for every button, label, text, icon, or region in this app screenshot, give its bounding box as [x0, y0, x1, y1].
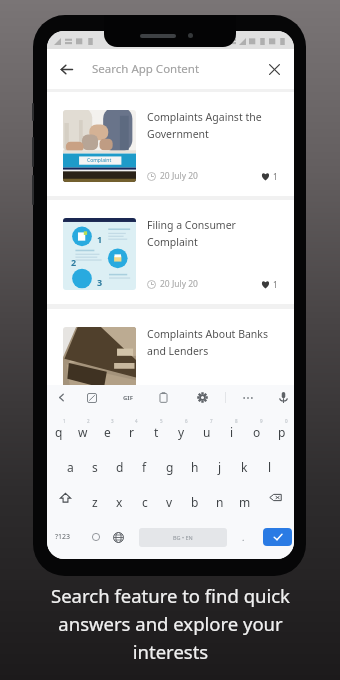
button[interactable]: p [269, 410, 294, 445]
staticText: 0 [285, 418, 288, 424]
staticText: t [154, 424, 159, 440]
staticText: y [178, 424, 185, 440]
staticText: 6 [185, 418, 188, 424]
button[interactable]: s [82, 445, 107, 480]
staticText: q [55, 424, 63, 440]
button[interactable]: Clipboard [151, 385, 176, 410]
button[interactable]: a [58, 445, 82, 480]
button[interactable]: u [194, 410, 219, 445]
staticText: 20 July 20 [160, 170, 198, 182]
staticText: 4 [135, 418, 138, 424]
staticText: 20 July 20 [160, 387, 198, 399]
button[interactable]: d [107, 445, 132, 480]
staticText: 9 [260, 418, 263, 424]
button[interactable]: 1 [47, 200, 294, 304]
staticText: ?123 [55, 532, 71, 542]
button[interactable]: Shift [47, 480, 83, 515]
button[interactable]: Back [53, 56, 79, 82]
button[interactable]: z [83, 480, 107, 515]
button[interactable]: Change language [106, 525, 130, 549]
staticText: . [242, 531, 245, 543]
staticText: u [203, 424, 211, 440]
button[interactable]: BG • EN [139, 528, 227, 547]
staticText: x [116, 494, 123, 510]
staticText: 1 [97, 233, 103, 245]
staticText: m [239, 494, 251, 510]
button[interactable]: e [95, 410, 119, 445]
staticText: h [191, 459, 199, 475]
staticText: 2 [87, 418, 90, 424]
staticText: d [116, 459, 124, 475]
staticText: Complaints About Banks and Lenders [147, 327, 278, 358]
button[interactable]: r [119, 410, 144, 445]
staticText: n [216, 494, 224, 510]
staticText: 1 [273, 171, 278, 182]
staticText: e [104, 424, 111, 440]
button[interactable]: g [157, 445, 182, 480]
staticText: s [92, 459, 98, 475]
button[interactable]: Clear search [262, 57, 286, 81]
staticText: Search App Content [92, 61, 200, 77]
button[interactable]: b [182, 480, 207, 515]
staticText: a [67, 459, 74, 475]
staticText: 8 [235, 418, 238, 424]
staticText: l [268, 459, 272, 475]
staticText: g [166, 459, 174, 475]
button[interactable]: q [47, 410, 71, 445]
button[interactable]: Previous [49, 385, 74, 410]
button[interactable]: k [232, 445, 257, 480]
staticText: 7 [210, 418, 213, 424]
button[interactable]: More [235, 385, 260, 410]
staticText: Complaint [87, 157, 112, 164]
button[interactable]: Voice input [271, 385, 294, 410]
staticText: w [78, 424, 88, 440]
staticText: v [166, 494, 173, 510]
button[interactable]: f [132, 445, 157, 480]
button[interactable]: x [107, 480, 132, 515]
staticText: b [191, 494, 199, 510]
button[interactable]: Emoji [84, 525, 108, 549]
button[interactable]: j [207, 445, 232, 480]
staticText: Search feature to find quick answers and… [44, 583, 297, 664]
button[interactable]: GIF [115, 385, 140, 410]
staticText: i [230, 424, 234, 440]
button[interactable]: ?123 [51, 515, 75, 559]
staticText: r [129, 424, 134, 440]
button[interactable]: i [219, 410, 244, 445]
staticText: f [142, 459, 147, 475]
button[interactable]: Sticker [79, 385, 104, 410]
button[interactable]: t [144, 410, 169, 445]
button[interactable]: Backspace [257, 480, 294, 515]
button[interactable]: y [169, 410, 194, 445]
button[interactable]: o [244, 410, 269, 445]
staticText: 1 [273, 279, 278, 290]
staticText: z [92, 494, 98, 510]
staticText: 20 July 20 [160, 278, 198, 290]
staticText: 1 [63, 418, 66, 424]
staticText: Filing a Consumer Complaint [147, 218, 278, 249]
staticText: Complaints Against the Government [147, 110, 278, 141]
button[interactable]: v [157, 480, 182, 515]
button[interactable]: l [257, 445, 282, 480]
staticText: 3 [97, 276, 103, 288]
staticText: BG • EN [173, 534, 193, 541]
staticText: k [241, 459, 248, 475]
staticText: GIF [123, 394, 133, 402]
button[interactable]: c [132, 480, 157, 515]
staticText: 5 [160, 418, 163, 424]
button[interactable]: Complaint [47, 92, 294, 196]
button[interactable]: Settings [190, 385, 215, 410]
staticText: o [253, 424, 261, 440]
staticText: p [278, 424, 286, 440]
staticText: c [142, 494, 148, 510]
button[interactable]: m [232, 480, 257, 515]
staticText: j [218, 459, 222, 475]
button[interactable]: . [233, 527, 253, 547]
staticText: 2 [71, 256, 77, 268]
button[interactable]: Complaints About Banks and Lenders [47, 309, 294, 413]
button[interactable]: Enter [263, 528, 292, 546]
button[interactable]: n [207, 480, 232, 515]
button[interactable]: w [71, 410, 95, 445]
button[interactable]: h [182, 445, 207, 480]
